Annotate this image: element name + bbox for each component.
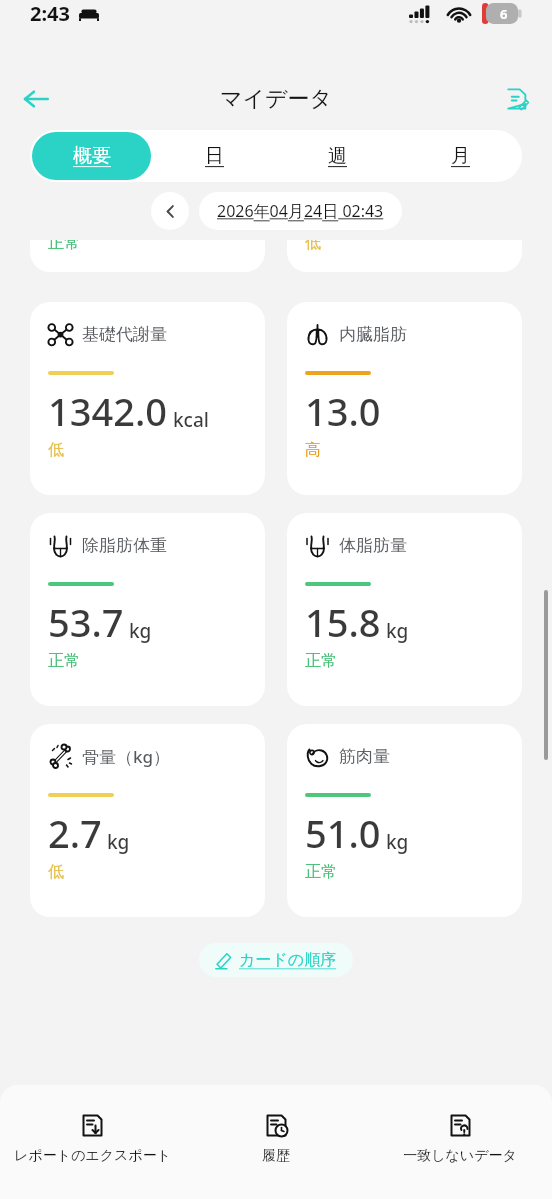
staticText: kcal bbox=[173, 407, 209, 433]
staticText: 正常 bbox=[305, 651, 337, 671]
staticText: マイデータ bbox=[220, 85, 333, 113]
button[interactable]: 体脂肪量 bbox=[287, 513, 522, 706]
button[interactable]: カードの順序 bbox=[199, 943, 353, 977]
button[interactable]: 日 bbox=[155, 132, 274, 180]
button[interactable]: 履歴 bbox=[184, 1113, 368, 1199]
staticText: 週 bbox=[328, 144, 347, 168]
button[interactable]: 概要 bbox=[32, 132, 151, 180]
staticText: 13.0 bbox=[305, 385, 381, 437]
staticText: 日 bbox=[205, 144, 224, 168]
button[interactable]: 月 bbox=[401, 132, 520, 180]
staticText: 53.7 bbox=[48, 596, 124, 648]
button[interactable]: 2026年04月24日 02:43 bbox=[199, 192, 402, 230]
staticText: kg bbox=[386, 618, 409, 644]
button[interactable]: レポートのエクスポート bbox=[0, 1113, 184, 1199]
button[interactable]: 低 bbox=[287, 240, 522, 272]
staticText: 月 bbox=[451, 144, 470, 168]
button[interactable]: 骨量（kg） bbox=[30, 724, 265, 917]
staticText: 低 bbox=[48, 440, 64, 460]
button[interactable]: 週 bbox=[278, 132, 397, 180]
staticText: 1342.0 bbox=[48, 385, 168, 437]
staticText: 2026年04月24日 02:43 bbox=[217, 200, 384, 222]
staticText: 骨量（kg） bbox=[82, 745, 171, 768]
staticText: kg bbox=[386, 829, 409, 855]
staticText: 体脂肪量 bbox=[339, 535, 407, 556]
staticText: レポートのエクスポート bbox=[14, 1147, 171, 1165]
staticText: 高 bbox=[305, 440, 321, 460]
staticText: カードの順序 bbox=[239, 950, 337, 970]
staticText: 概要 bbox=[73, 144, 111, 168]
staticText: 正常 bbox=[48, 240, 80, 253]
button[interactable]: 一致しないデータ bbox=[368, 1113, 552, 1199]
button[interactable]: Back bbox=[12, 75, 60, 123]
staticText: kg bbox=[129, 618, 152, 644]
button[interactable]: 正常 bbox=[30, 240, 265, 272]
staticText: 筋肉量 bbox=[339, 746, 390, 767]
staticText: 6 bbox=[500, 5, 508, 23]
staticText: 正常 bbox=[305, 862, 337, 882]
staticText: 履歴 bbox=[262, 1147, 290, 1165]
staticText: 51.0 bbox=[305, 807, 381, 859]
staticText: 正常 bbox=[48, 651, 80, 671]
staticText: 内臓脂肪 bbox=[339, 324, 407, 345]
button[interactable]: 筋肉量 bbox=[287, 724, 522, 917]
staticText: 基礎代謝量 bbox=[82, 324, 167, 345]
button[interactable]: Previous bbox=[151, 192, 189, 230]
button[interactable]: 基礎代謝量 bbox=[30, 302, 265, 495]
staticText: 除脂肪体重 bbox=[82, 535, 167, 556]
staticText: 一致しないデータ bbox=[403, 1147, 517, 1165]
button[interactable]: Edit data bbox=[494, 76, 540, 122]
button[interactable]: 内臓脂肪 bbox=[287, 302, 522, 495]
staticText: 2.7 bbox=[48, 807, 102, 859]
button[interactable]: 除脂肪体重 bbox=[30, 513, 265, 706]
staticText: 低 bbox=[305, 240, 321, 253]
staticText: 2:43 bbox=[30, 0, 70, 27]
staticText: kg bbox=[107, 829, 130, 855]
staticText: 15.8 bbox=[305, 596, 381, 648]
staticText: 低 bbox=[48, 862, 64, 882]
